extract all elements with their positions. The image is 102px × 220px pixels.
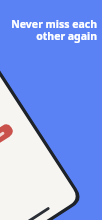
button[interactable]: Never miss each other again bbox=[0, 0, 102, 220]
staticText: Never miss each other again bbox=[8, 17, 97, 43]
